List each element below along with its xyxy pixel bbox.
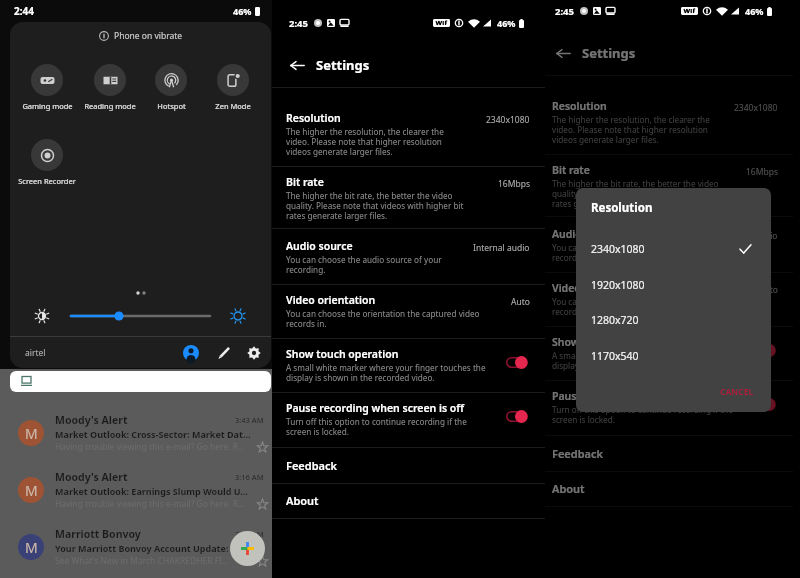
staticText: 1280x720	[591, 313, 639, 327]
button[interactable]: Show touch operation	[545, 326, 793, 380]
staticText: 2340x1080	[591, 242, 645, 256]
staticText: The higher the resolution, the clearer t…	[552, 114, 724, 146]
button[interactable]: Back	[550, 40, 576, 66]
staticText: A small white marker where your finger t…	[286, 362, 489, 384]
staticText: Audio source	[552, 227, 619, 241]
staticText: Internal audio	[721, 230, 778, 242]
staticText: 1920x1080	[591, 278, 645, 292]
staticText: About	[286, 493, 319, 508]
button[interactable]: Bit rate	[545, 154, 793, 216]
staticText: Your Marriott Bonvoy Account Update: S	[55, 542, 236, 554]
button[interactable]: 2340x1080	[576, 231, 771, 266]
staticText: Show touch operation	[286, 347, 399, 361]
staticText: Auto	[759, 284, 778, 296]
button[interactable]: Video orientation	[272, 284, 545, 338]
staticText: Pause recording when screen is off	[286, 401, 465, 415]
button[interactable]: Compose	[230, 531, 265, 566]
staticText: airtel	[25, 347, 46, 359]
staticText: You can choose the audio source of your …	[552, 242, 740, 264]
staticText: Settings	[316, 56, 370, 74]
staticText: 16Mbps	[746, 166, 778, 178]
staticText: 3:16 AM	[235, 472, 264, 482]
staticText: 46%	[745, 5, 764, 17]
staticText: M	[25, 424, 38, 443]
staticText: Having trouble viewing this e-mail? Go h…	[55, 441, 253, 453]
staticText: 46%	[497, 17, 516, 29]
staticText: Zen Mode	[215, 101, 251, 111]
staticText: Settings	[582, 44, 636, 62]
staticText: Show touch operation	[552, 335, 665, 349]
staticText: You can choose the orientation the captu…	[552, 296, 752, 318]
staticText: Video orientation	[552, 281, 642, 295]
staticText: 46%	[745, 5, 764, 17]
button[interactable]: Resolution	[272, 87, 545, 166]
staticText: Video orientation	[286, 293, 376, 307]
staticText: Resolution	[286, 111, 341, 125]
staticText: Pause recording when screen is off	[552, 389, 731, 403]
button[interactable]: About	[272, 483, 545, 518]
staticText: 2:44	[14, 4, 34, 18]
button[interactable]: Video orientation	[545, 272, 793, 326]
staticText: You can choose the orientation the captu…	[286, 308, 486, 330]
button[interactable]: Pause recording when screen is off	[545, 380, 793, 435]
button[interactable]: Screen Recorder	[16, 139, 78, 186]
staticText: Feedback	[552, 446, 603, 461]
staticText: 3:43 AM	[235, 415, 264, 425]
staticText: You can choose the audio source of your …	[286, 254, 474, 276]
button[interactable]: 1920x1080	[576, 267, 771, 302]
button[interactable]: Reading mode	[79, 64, 141, 111]
staticText: 1170x540	[591, 349, 639, 363]
button[interactable]: Audio source	[272, 228, 545, 284]
button[interactable]: Settings	[242, 341, 266, 365]
staticText: Bit rate	[552, 163, 590, 177]
staticText: Bit rate	[286, 175, 324, 189]
button[interactable]: Hotspot	[140, 64, 202, 111]
staticText: Turn off this option to continue recordi…	[552, 404, 742, 426]
staticText: 2340x1080	[486, 114, 530, 126]
button[interactable]: About	[545, 471, 793, 506]
staticText: 2:45	[555, 5, 574, 18]
staticText: Having trouble viewing this e-mail? Go h…	[55, 498, 253, 510]
button[interactable]: Zen Mode	[202, 64, 264, 111]
staticText: Market Outlook: Earnings Slump Would U…	[55, 485, 249, 497]
staticText: 2340x1080	[734, 102, 778, 114]
button[interactable]: Edit	[212, 341, 236, 365]
staticText: M	[25, 481, 38, 500]
button[interactable]: Gaming mode	[16, 64, 78, 111]
button[interactable]: Account	[179, 341, 203, 365]
button[interactable]: 1170x540	[576, 338, 771, 373]
staticText: 3:00 AM	[235, 529, 264, 539]
button[interactable]: CANCEL	[714, 381, 760, 403]
staticText: Resolution	[552, 99, 607, 113]
button[interactable]: Bit rate	[272, 166, 545, 228]
button[interactable]: M	[0, 404, 272, 461]
button[interactable]: Feedback	[272, 447, 545, 483]
staticText: Auto	[511, 296, 530, 308]
staticText: Marriott Bonvoy	[55, 527, 235, 541]
staticText: Feedback	[286, 458, 337, 473]
staticText: 16Mbps	[498, 178, 530, 190]
button[interactable]: Pause recording when screen is off	[272, 392, 545, 447]
button[interactable]: 1280x720	[576, 302, 771, 337]
staticText: Resolution	[591, 200, 653, 216]
button[interactable]: Show touch operation	[272, 338, 545, 392]
button[interactable]	[10, 371, 271, 392]
staticText: Moody's Alert	[55, 413, 235, 427]
button[interactable]: Resolution	[545, 75, 793, 154]
staticText: 2:45	[555, 5, 574, 18]
staticText: A small white marker where your finger t…	[552, 350, 755, 372]
staticText: Market Outlook: Cross-Sector: Market Dat…	[55, 428, 251, 440]
staticText: The higher the bit rate, the better the …	[286, 190, 474, 222]
button[interactable]: Feedback	[545, 435, 793, 471]
button[interactable]: M	[0, 518, 272, 575]
button[interactable]: M	[0, 461, 272, 518]
staticText: Gaming mode	[22, 101, 73, 111]
button[interactable]: Back	[284, 52, 310, 78]
staticText: The higher the bit rate, the better the …	[552, 178, 740, 210]
staticText: 2:45	[289, 17, 308, 30]
button[interactable]: Audio source	[545, 216, 793, 272]
staticText: Reading mode	[84, 101, 136, 111]
staticText: See What's New in March CHAKREDHER FI…	[55, 555, 253, 567]
staticText: Screen Recorder	[18, 176, 76, 186]
staticText: CANCEL	[720, 386, 754, 398]
